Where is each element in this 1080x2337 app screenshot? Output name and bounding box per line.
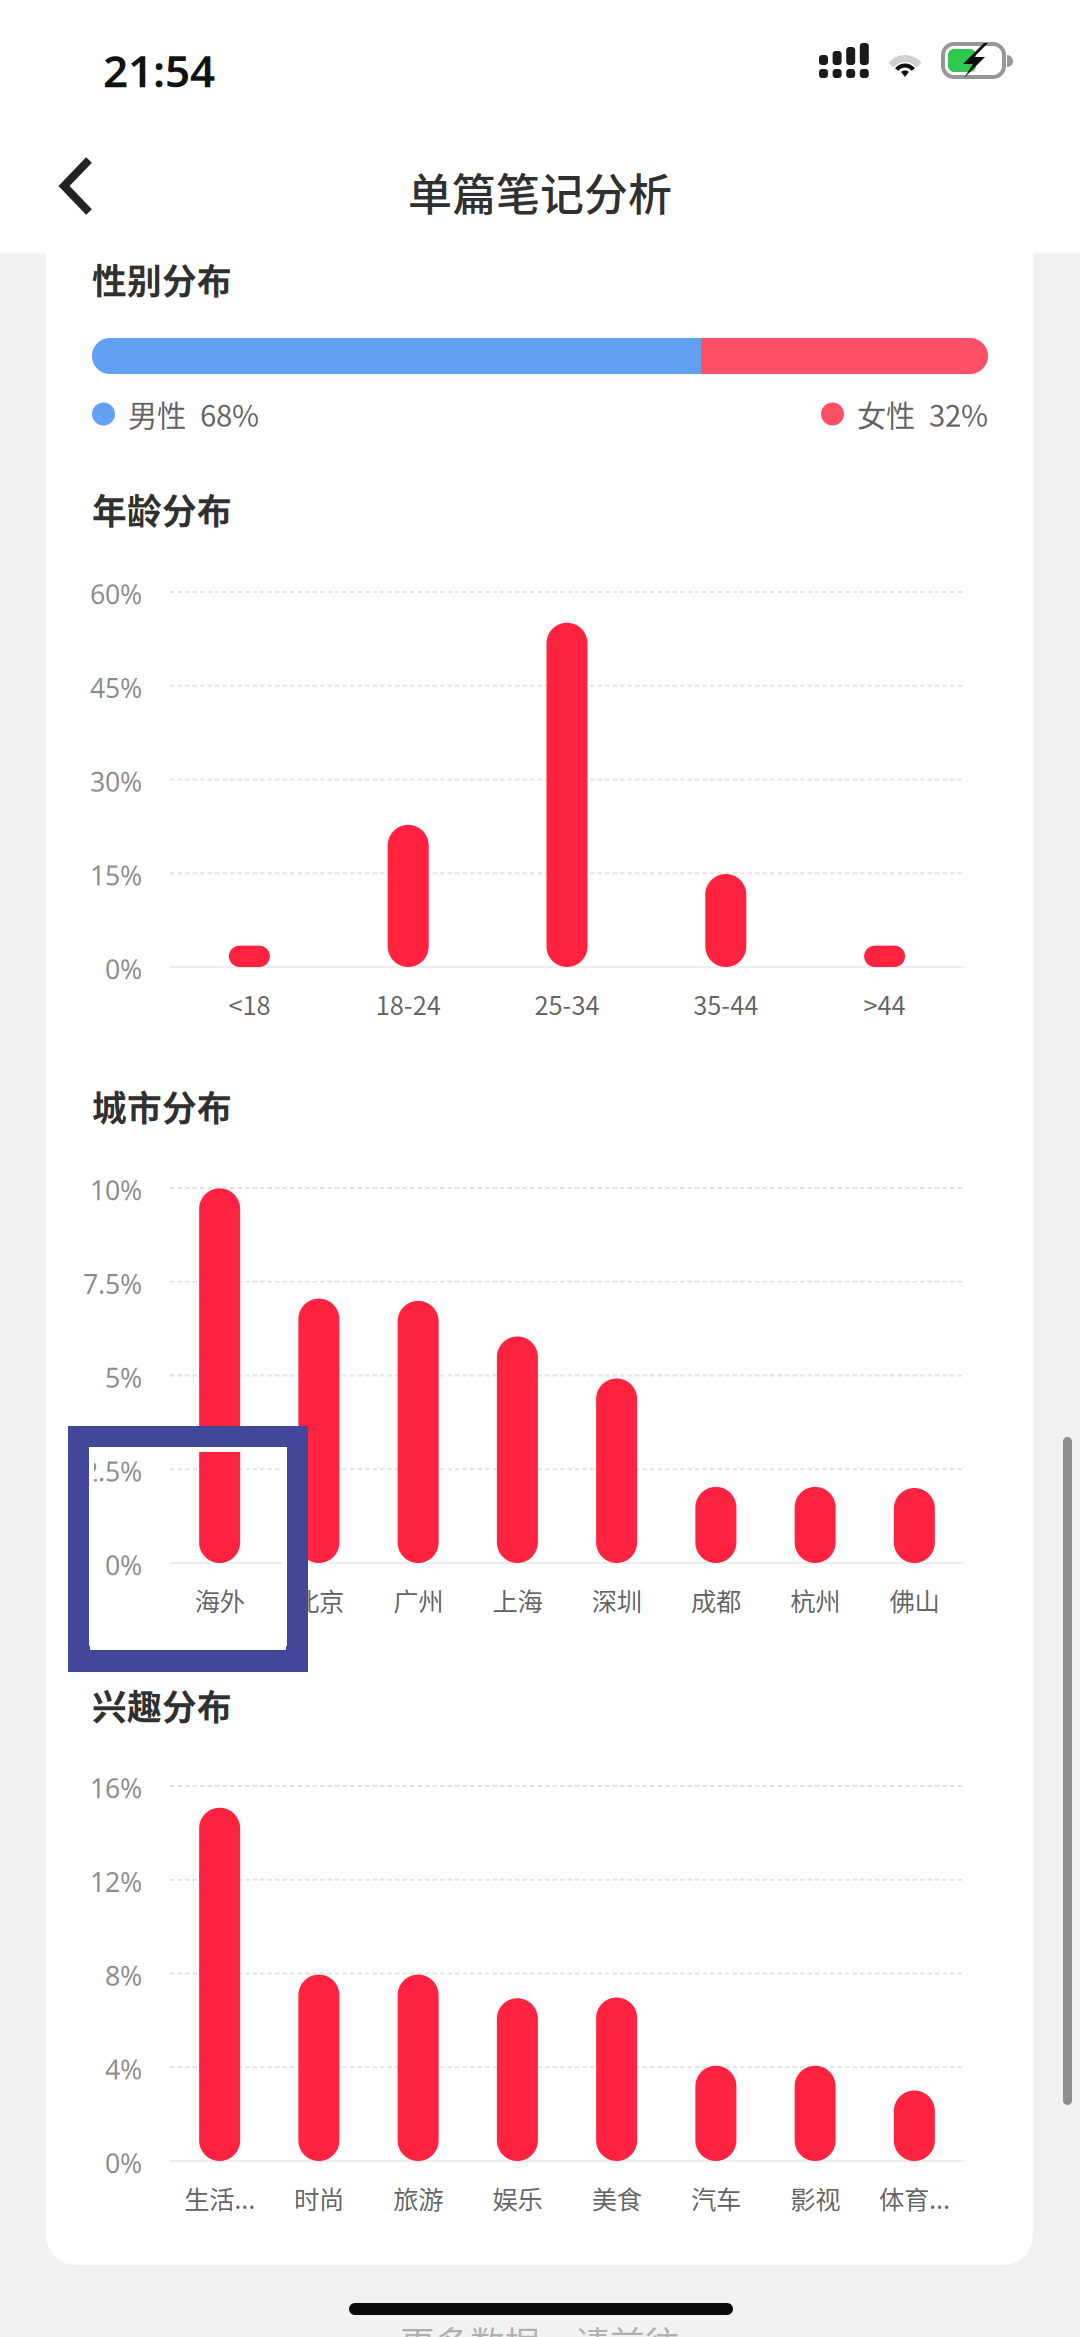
staticText: 8% [105,1958,142,1993]
staticText: 45% [90,670,142,705]
staticText: 美食 [592,2180,642,2216]
staticText: 海外 [195,1582,245,1618]
staticText: 旅游 [393,2180,443,2216]
staticText: 影视 [790,2180,840,2216]
staticText: 娱乐 [492,2180,542,2216]
staticText: >44 [864,986,906,1022]
staticText: 性别分布 [92,254,232,304]
staticText: 30% [90,764,142,799]
staticText: 0% [105,1547,142,1583]
staticText: 兴趣分布 [92,1680,232,1730]
staticText: 18-24 [376,986,441,1022]
staticText: 更多数据，请前往 [400,2317,680,2337]
staticText: 佛山 [889,1582,939,1618]
staticText: 汽车 [691,2180,741,2216]
staticText: 60% [90,576,142,612]
staticText: 体育... [879,2180,950,2216]
staticText: 0% [105,2145,142,2181]
staticText: 4% [105,2051,142,2087]
staticText: 2.5% [83,1453,142,1489]
staticText: 城市分布 [92,1081,232,1131]
staticText: 35-44 [693,986,758,1022]
staticText: 12% [90,1864,142,1899]
staticText: 北京 [294,1582,344,1618]
staticText: 16% [90,1770,142,1806]
staticText: 成都 [691,1582,741,1618]
staticText: 10% [90,1172,142,1208]
staticText: 时尚 [294,2180,344,2216]
staticText: 生活... [184,2180,255,2216]
staticText: 广州 [393,1582,443,1618]
staticText: 0% [105,951,142,987]
staticText: <18 [228,986,270,1022]
button[interactable]: 返回 [29,138,125,234]
staticText: 单篇笔记分析 [408,160,672,224]
staticText: 上海 [492,1582,542,1618]
staticText: 深圳 [592,1582,642,1618]
staticText: 5% [105,1360,142,1395]
staticText: 年龄分布 [92,484,232,534]
staticText: 21:54 [103,41,215,99]
staticText: 女性 32% [857,393,988,435]
staticText: 杭州 [790,1582,840,1618]
staticText: 7.5% [83,1266,142,1301]
staticText: 男性 68% [128,393,259,435]
staticText: 15% [90,857,142,893]
staticText: 25-34 [534,986,599,1022]
